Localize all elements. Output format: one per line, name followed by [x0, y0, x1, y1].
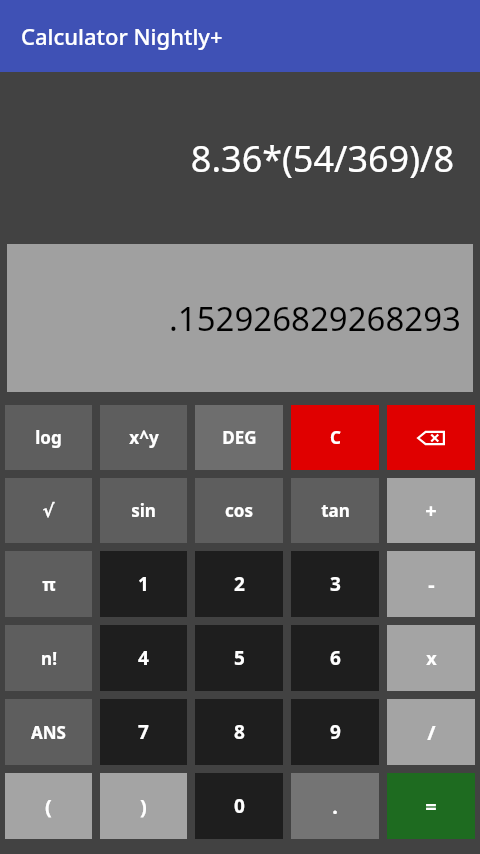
- staticText: 0: [234, 793, 245, 819]
- staticText: 6: [330, 645, 341, 671]
- button[interactable]: +: [387, 478, 475, 543]
- staticText: tan: [321, 499, 350, 522]
- staticText: 9: [330, 719, 341, 745]
- button[interactable]: 3: [291, 551, 379, 617]
- staticText: 4: [138, 645, 149, 671]
- staticText: 5: [234, 645, 245, 671]
- button[interactable]: log: [5, 405, 92, 470]
- button[interactable]: x^y: [100, 405, 187, 470]
- staticText: 8: [234, 719, 245, 745]
- button[interactable]: /: [387, 699, 475, 765]
- button[interactable]: x: [387, 625, 475, 691]
- staticText: 8.36*(54/369)/8: [190, 134, 454, 183]
- button[interactable]: 8: [195, 699, 283, 765]
- button[interactable]: (: [5, 773, 92, 839]
- button[interactable]: π: [5, 551, 92, 617]
- staticText: π: [42, 572, 56, 597]
- button[interactable]: -: [387, 551, 475, 617]
- staticText: DEG: [222, 426, 257, 449]
- staticText: 1: [138, 571, 149, 597]
- staticText: ANS: [31, 721, 66, 744]
- staticText: cos: [225, 499, 253, 522]
- button[interactable]: ): [100, 773, 187, 839]
- staticText: 7: [138, 719, 149, 745]
- staticText: log: [35, 426, 62, 449]
- button[interactable]: =: [387, 773, 475, 839]
- staticText: =: [425, 793, 437, 820]
- button[interactable]: .: [291, 773, 379, 839]
- button[interactable]: 6: [291, 625, 379, 691]
- staticText: 3: [330, 571, 341, 597]
- staticText: C: [330, 426, 341, 449]
- button[interactable]: DEG: [195, 405, 283, 470]
- button[interactable]: cos: [195, 478, 283, 543]
- staticText: /: [427, 719, 436, 746]
- button[interactable]: ANS: [5, 699, 92, 765]
- button[interactable]: sin: [100, 478, 187, 543]
- staticText: -: [428, 571, 435, 598]
- staticText: +: [425, 497, 437, 524]
- staticText: 2: [234, 571, 245, 597]
- button[interactable]: 4: [100, 625, 187, 691]
- staticText: √: [42, 500, 55, 521]
- button[interactable]: tan: [291, 478, 379, 543]
- staticText: Calculator Nightly+: [21, 21, 223, 51]
- button[interactable]: 9: [291, 699, 379, 765]
- staticText: .: [332, 793, 338, 820]
- staticText: n!: [41, 647, 57, 670]
- button[interactable]: 5: [195, 625, 283, 691]
- staticText: x: [426, 646, 437, 671]
- staticText: x^y: [129, 426, 159, 449]
- staticText: ): [140, 793, 147, 820]
- button[interactable]: √: [5, 478, 92, 543]
- staticText: .152926829268293: [19, 296, 461, 341]
- button[interactable]: 2: [195, 551, 283, 617]
- button[interactable]: Backspace: [387, 405, 475, 470]
- button[interactable]: 7: [100, 699, 187, 765]
- staticText: (: [45, 793, 52, 820]
- button[interactable]: n!: [5, 625, 92, 691]
- button[interactable]: C: [291, 405, 379, 470]
- button[interactable]: 1: [100, 551, 187, 617]
- staticText: sin: [131, 499, 156, 522]
- button[interactable]: 0: [195, 773, 283, 839]
